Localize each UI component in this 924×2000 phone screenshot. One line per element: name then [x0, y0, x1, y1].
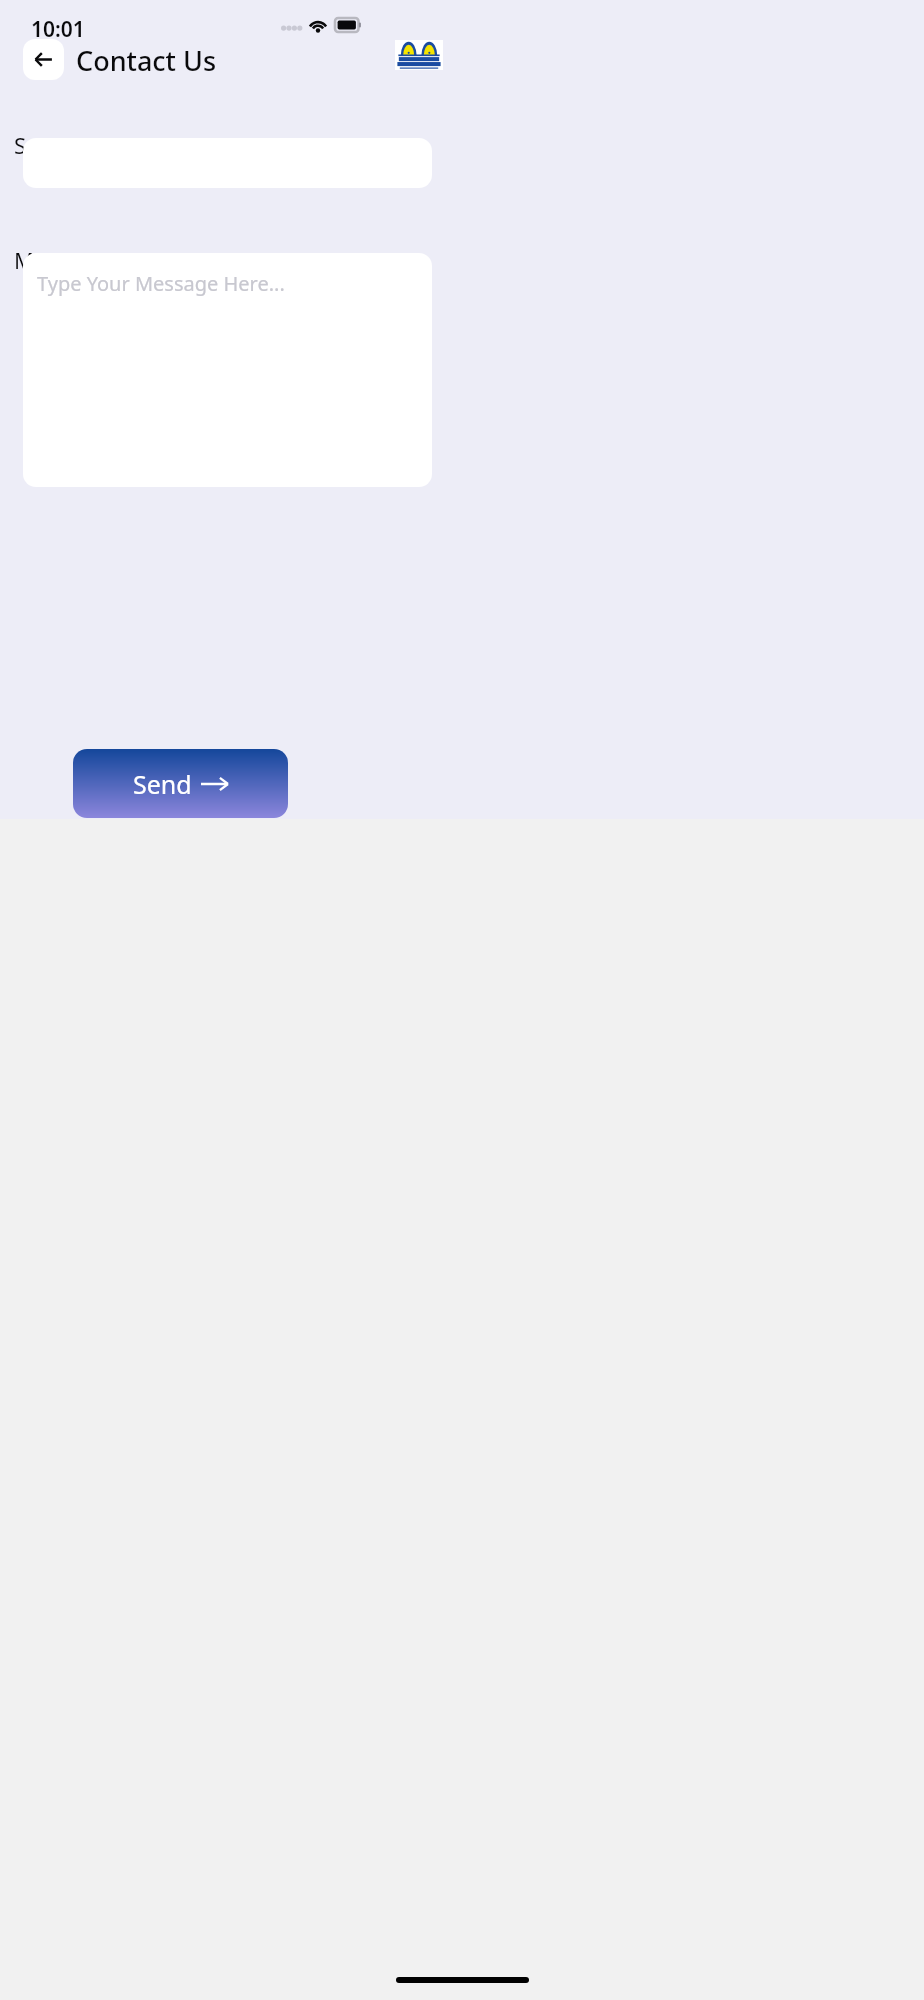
button[interactable]: Back	[23, 39, 64, 80]
staticText: Type Your Message Here...	[37, 270, 285, 297]
staticText: Message	[14, 245, 106, 275]
staticText: 10:01	[31, 15, 85, 44]
staticText: Send	[133, 767, 192, 801]
staticText: Subject	[14, 130, 90, 160]
button[interactable]: Type Your Message Here...	[23, 253, 432, 487]
button[interactable]: Send	[73, 749, 288, 818]
staticText: Contact Us	[76, 42, 217, 79]
